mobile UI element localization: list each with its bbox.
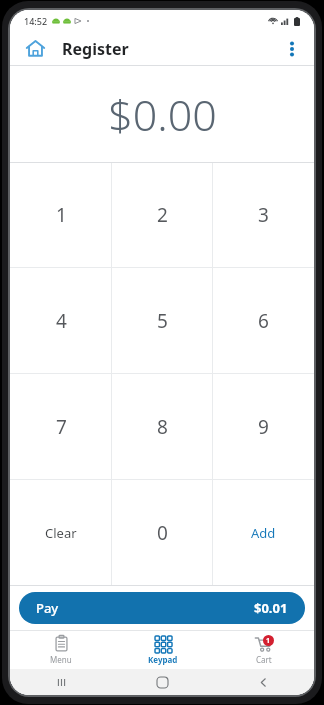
button[interactable]: 6	[213, 268, 314, 373]
staticText: 4	[56, 308, 67, 334]
staticText: 9	[258, 414, 269, 440]
button[interactable]: 1	[213, 631, 314, 669]
button[interactable]: 5	[112, 268, 213, 373]
button[interactable]: Menu	[10, 631, 112, 669]
button[interactable]: 2	[112, 163, 213, 267]
staticText: 8	[157, 414, 168, 440]
staticText: 3	[258, 202, 269, 228]
button[interactable]: Pay	[19, 592, 305, 624]
staticText: Register	[62, 38, 129, 60]
staticText: 1	[266, 636, 271, 646]
button[interactable]: 8	[112, 374, 213, 479]
button[interactable]: More options	[277, 34, 307, 64]
button[interactable]: Home	[112, 669, 213, 695]
button[interactable]: 1	[10, 163, 112, 267]
button[interactable]: Home	[18, 32, 52, 65]
staticText: Menu	[50, 654, 72, 665]
staticText: 2	[157, 202, 168, 228]
staticText: 7	[56, 414, 67, 440]
button[interactable]: 9	[213, 374, 314, 479]
staticText: $0.00	[108, 85, 217, 144]
staticText: $0.01	[254, 599, 288, 617]
staticText: 14:52	[24, 15, 48, 27]
staticText: 6	[258, 308, 269, 334]
staticText: 5	[157, 308, 168, 334]
button[interactable]: 0	[112, 480, 213, 585]
staticText: Clear	[45, 524, 77, 542]
button[interactable]: Add	[213, 480, 314, 585]
staticText: 1	[56, 202, 67, 228]
staticText: Keypad	[148, 654, 178, 665]
button[interactable]: Recents	[10, 669, 112, 695]
staticText: Cart	[256, 654, 272, 665]
button[interactable]: Clear	[10, 480, 112, 585]
staticText: 0	[157, 520, 168, 546]
staticText: Add	[251, 524, 276, 542]
button[interactable]: 7	[10, 374, 112, 479]
button[interactable]: 4	[10, 268, 112, 373]
button[interactable]: Back	[213, 669, 314, 695]
button[interactable]: Keypad	[112, 631, 213, 669]
staticText: Pay	[36, 599, 59, 617]
button[interactable]: 3	[213, 163, 314, 267]
